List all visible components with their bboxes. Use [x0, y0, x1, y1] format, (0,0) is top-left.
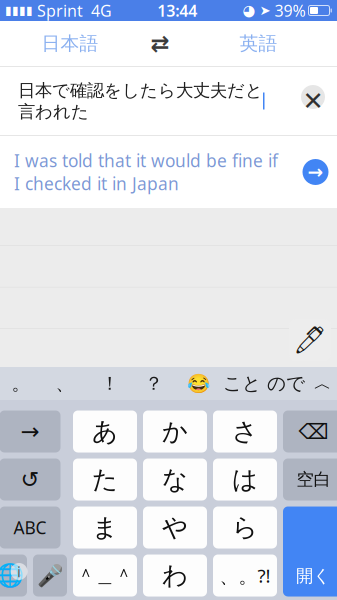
- staticText: 4G: [83, 0, 112, 21]
- button[interactable]: こと: [220, 367, 264, 400]
- staticText: な: [162, 464, 188, 495]
- staticText: 開く: [296, 565, 331, 586]
- staticText: ◕: [242, 2, 255, 19]
- button[interactable]: Dictation: [33, 554, 67, 596]
- staticText: 日本語: [41, 32, 98, 55]
- staticText: 🌐: [0, 563, 24, 588]
- staticText: こと: [223, 372, 261, 395]
- button[interactable]: あ: [73, 410, 137, 452]
- staticText: 39%: [270, 0, 305, 21]
- button[interactable]: ま: [73, 506, 137, 548]
- staticText: 🎤: [36, 563, 63, 588]
- staticText: た: [92, 464, 118, 495]
- button[interactable]: 開く: [283, 506, 337, 596]
- staticText: 日本で確認をしたら大丈夫だと言われた: [18, 80, 263, 122]
- button[interactable]: ↺: [0, 458, 60, 500]
- staticText: ので: [267, 372, 305, 395]
- button[interactable]: さ: [213, 410, 277, 452]
- button[interactable]: ？: [132, 367, 176, 400]
- staticText: 、。?!: [219, 563, 270, 588]
- button[interactable]: →: [0, 410, 60, 452]
- staticText: ？: [144, 372, 163, 395]
- button[interactable]: た: [73, 458, 137, 500]
- staticText: か: [162, 416, 188, 447]
- staticText: I was told that it would be fine if I ch…: [14, 149, 278, 195]
- button[interactable]: 日本語: [10, 21, 130, 66]
- staticText: ら: [232, 512, 258, 543]
- staticText: ！: [100, 372, 119, 395]
- staticText: あ: [92, 416, 118, 447]
- button[interactable]: か: [143, 410, 207, 452]
- staticText: ABC: [13, 516, 46, 539]
- staticText: さ: [232, 416, 258, 447]
- staticText: 英語: [239, 32, 277, 55]
- button[interactable]: や: [143, 506, 207, 548]
- staticText: 、: [55, 372, 74, 395]
- button[interactable]: 😂: [176, 367, 220, 400]
- staticText: ↺: [20, 467, 39, 492]
- button[interactable]: Clear text: [289, 66, 337, 136]
- button[interactable]: ！: [88, 367, 132, 400]
- button[interactable]: ⌫: [283, 410, 337, 452]
- button[interactable]: 、。?!: [213, 554, 277, 596]
- button[interactable]: ので: [264, 367, 308, 400]
- button[interactable]: Swap languages: [130, 21, 190, 66]
- staticText: ⇄: [150, 31, 169, 56]
- staticText: 13:44: [157, 0, 197, 21]
- button[interactable]: ABC: [0, 506, 60, 548]
- button[interactable]: 英語: [190, 21, 327, 66]
- button[interactable]: ＾＿＾: [73, 554, 137, 596]
- staticText: 空白: [296, 469, 330, 490]
- staticText: は: [232, 464, 258, 495]
- staticText: →: [20, 419, 39, 444]
- button[interactable]: は: [213, 458, 277, 500]
- button[interactable]: わ: [143, 554, 207, 596]
- staticText: ▮▮▮▮: [5, 4, 33, 17]
- staticText: ➤: [255, 3, 270, 18]
- button[interactable]: Collapse suggestions: [308, 367, 337, 400]
- staticText: わ: [162, 560, 188, 591]
- staticText: Sprint: [33, 0, 83, 21]
- staticText: 🖊: [293, 325, 327, 355]
- staticText: 。: [11, 372, 30, 395]
- button[interactable]: な: [143, 458, 207, 500]
- staticText: や: [162, 512, 188, 543]
- button[interactable]: Go to translation: [290, 136, 337, 208]
- button[interactable]: ら: [213, 506, 277, 548]
- button[interactable]: Handwriting input: [289, 319, 331, 361]
- staticText: ︿: [314, 373, 331, 394]
- button[interactable]: 。: [0, 367, 42, 400]
- button[interactable]: Switch keyboard: [0, 554, 27, 596]
- staticText: ✕: [302, 87, 323, 115]
- staticText: ＾＿＾: [76, 564, 133, 587]
- button[interactable]: 、: [42, 367, 88, 400]
- staticText: 😂: [186, 373, 209, 394]
- staticText: i: [17, 562, 21, 581]
- staticText: ⌫: [298, 419, 328, 444]
- button[interactable]: 空白: [283, 458, 337, 500]
- staticText: ま: [92, 512, 118, 543]
- staticText: →: [307, 161, 323, 183]
